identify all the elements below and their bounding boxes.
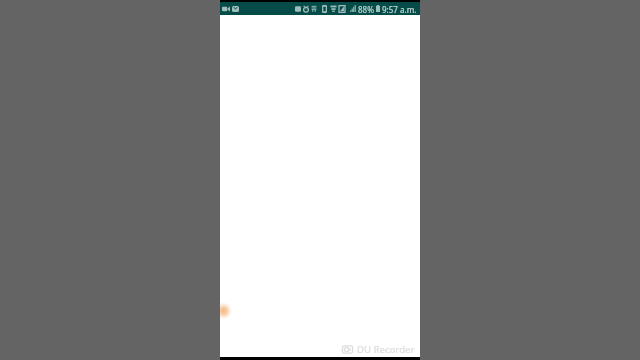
- staticText: 9:57 a.m.: [382, 4, 417, 15]
- staticText: 88%: [358, 4, 374, 15]
- button[interactable]: Add: [220, 302, 232, 319]
- staticText: DU Recorder: [357, 343, 415, 356]
